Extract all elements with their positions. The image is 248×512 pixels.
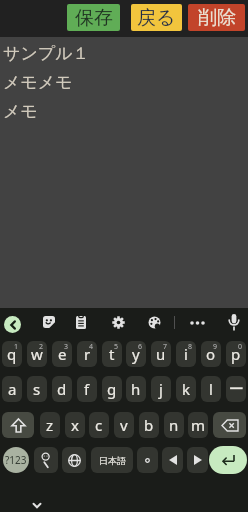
staticText: サンプル１ [3, 43, 90, 64]
button[interactable]: y [126, 341, 146, 367]
staticText: s [33, 379, 41, 399]
button[interactable] [32, 502, 42, 509]
staticText: 9 [213, 342, 218, 352]
button[interactable]: ?123 [3, 447, 29, 473]
button[interactable]: 日本語 [91, 447, 133, 473]
staticText: d [57, 379, 67, 399]
button[interactable] [4, 316, 21, 333]
button[interactable]: 戻る [131, 4, 182, 31]
staticText: 保存 [75, 6, 113, 30]
staticText: p [231, 344, 241, 364]
staticText: y [132, 344, 140, 364]
button[interactable] [213, 412, 246, 438]
staticText: 0 [238, 342, 243, 352]
button[interactable]: e [52, 341, 72, 367]
staticText: j [159, 379, 163, 399]
button[interactable]: p [226, 341, 246, 367]
button[interactable]: a [2, 376, 22, 402]
button[interactable] [43, 316, 55, 328]
button[interactable]: c [89, 412, 109, 438]
staticText: c [95, 415, 103, 435]
staticText: 2 [39, 342, 44, 352]
staticText: h [131, 379, 141, 399]
staticText: メモメモ [3, 72, 73, 93]
button[interactable]: q [2, 341, 22, 367]
button[interactable] [209, 446, 247, 474]
button[interactable] [76, 315, 86, 329]
staticText: l [209, 379, 213, 399]
button[interactable]: ー [226, 376, 246, 402]
button[interactable]: u [151, 341, 171, 367]
button[interactable] [190, 321, 205, 325]
staticText: ?123 [5, 453, 27, 467]
staticText: 日本語 [99, 455, 126, 466]
button[interactable]: 保存 [67, 4, 120, 31]
button[interactable]: 削除 [188, 4, 245, 31]
button[interactable]: r [77, 341, 97, 367]
staticText: 8 [188, 342, 193, 352]
button[interactable] [229, 314, 239, 331]
staticText: w [31, 344, 43, 364]
staticText: t [109, 344, 115, 364]
button[interactable] [62, 447, 86, 473]
staticText: 7 [163, 342, 168, 352]
button[interactable]: w [27, 341, 47, 367]
button[interactable]: m [188, 412, 208, 438]
button[interactable]: n [164, 412, 184, 438]
staticText: n [169, 415, 179, 435]
button[interactable]: i [176, 341, 196, 367]
staticText: v [120, 415, 128, 435]
button[interactable] [112, 316, 125, 329]
button[interactable]: z [40, 412, 60, 438]
staticText: 5 [114, 342, 119, 352]
button[interactable]: k [176, 376, 196, 402]
staticText: 3 [64, 342, 69, 352]
staticText: a [8, 379, 17, 399]
staticText: z [46, 415, 54, 435]
staticText: 1 [14, 342, 19, 352]
staticText: r [84, 344, 91, 364]
staticText: e [58, 344, 67, 364]
staticText: 6 [138, 342, 143, 352]
button[interactable] [187, 447, 208, 473]
button[interactable]: j [151, 376, 171, 402]
staticText: メモ [3, 101, 38, 122]
button[interactable]: d [52, 376, 72, 402]
button[interactable] [137, 447, 158, 473]
button[interactable] [162, 447, 183, 473]
staticText: g [107, 379, 117, 399]
staticText: f [84, 379, 90, 399]
button[interactable]: l [201, 376, 221, 402]
button[interactable]: t [102, 341, 122, 367]
staticText: q [7, 344, 17, 364]
button[interactable] [34, 447, 58, 473]
staticText: ー [229, 380, 244, 399]
staticText: k [182, 379, 191, 399]
staticText: 戻る [137, 6, 176, 30]
staticText: 削除 [198, 6, 236, 30]
staticText: u [156, 344, 166, 364]
button[interactable] [2, 412, 34, 438]
button[interactable]: b [139, 412, 159, 438]
staticText: b [144, 415, 154, 435]
staticText: 4 [89, 342, 94, 352]
button[interactable]: f [77, 376, 97, 402]
button[interactable]: x [65, 412, 85, 438]
button[interactable]: v [114, 412, 134, 438]
button[interactable]: g [102, 376, 122, 402]
button[interactable]: o [201, 341, 221, 367]
button[interactable]: h [126, 376, 146, 402]
staticText: m [191, 415, 206, 435]
staticText: i [184, 344, 188, 364]
staticText: x [71, 415, 79, 435]
button[interactable]: s [27, 376, 47, 402]
staticText: o [206, 344, 216, 364]
button[interactable] [148, 316, 161, 329]
